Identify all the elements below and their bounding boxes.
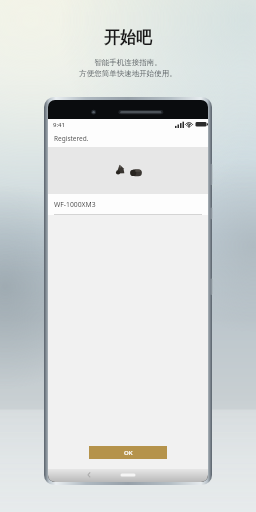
- staticText: 9:41: [53, 121, 65, 129]
- button[interactable]: OK: [89, 446, 167, 459]
- staticText: 方便您简单快速地开始使用。: [79, 69, 177, 78]
- staticText: OK: [124, 449, 133, 457]
- staticText: 智能手机连接指南。: [94, 58, 162, 67]
- staticText: 开始吧: [104, 28, 152, 48]
- other: Back: [82, 469, 174, 482]
- staticText: WF-1000XM3: [54, 200, 96, 209]
- button[interactable]: WF-1000XM3: [48, 194, 208, 214]
- staticText: Registered.: [54, 134, 89, 143]
